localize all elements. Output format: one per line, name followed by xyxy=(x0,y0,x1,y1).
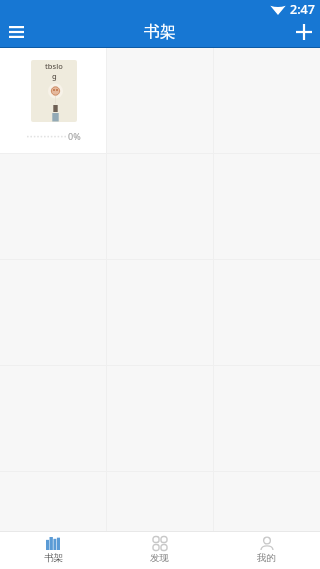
staticText: 2:47 xyxy=(290,1,315,17)
staticText: tbslo xyxy=(45,61,63,71)
staticText: 书架 xyxy=(144,22,176,42)
button[interactable]: 我的 xyxy=(213,532,320,569)
button[interactable]: 发现 xyxy=(106,532,213,569)
button[interactable]: tbslo xyxy=(0,48,107,153)
other: Wi-Fi xyxy=(270,4,286,15)
staticText: 书架 xyxy=(44,552,63,564)
staticText: 我的 xyxy=(257,552,276,564)
button[interactable]: Open navigation menu xyxy=(0,17,32,47)
button[interactable]: 书架 xyxy=(0,532,106,569)
staticText: g xyxy=(52,71,57,81)
staticText: 发现 xyxy=(150,552,169,564)
staticText: 0% xyxy=(68,130,81,142)
button[interactable]: Add book xyxy=(288,17,320,47)
